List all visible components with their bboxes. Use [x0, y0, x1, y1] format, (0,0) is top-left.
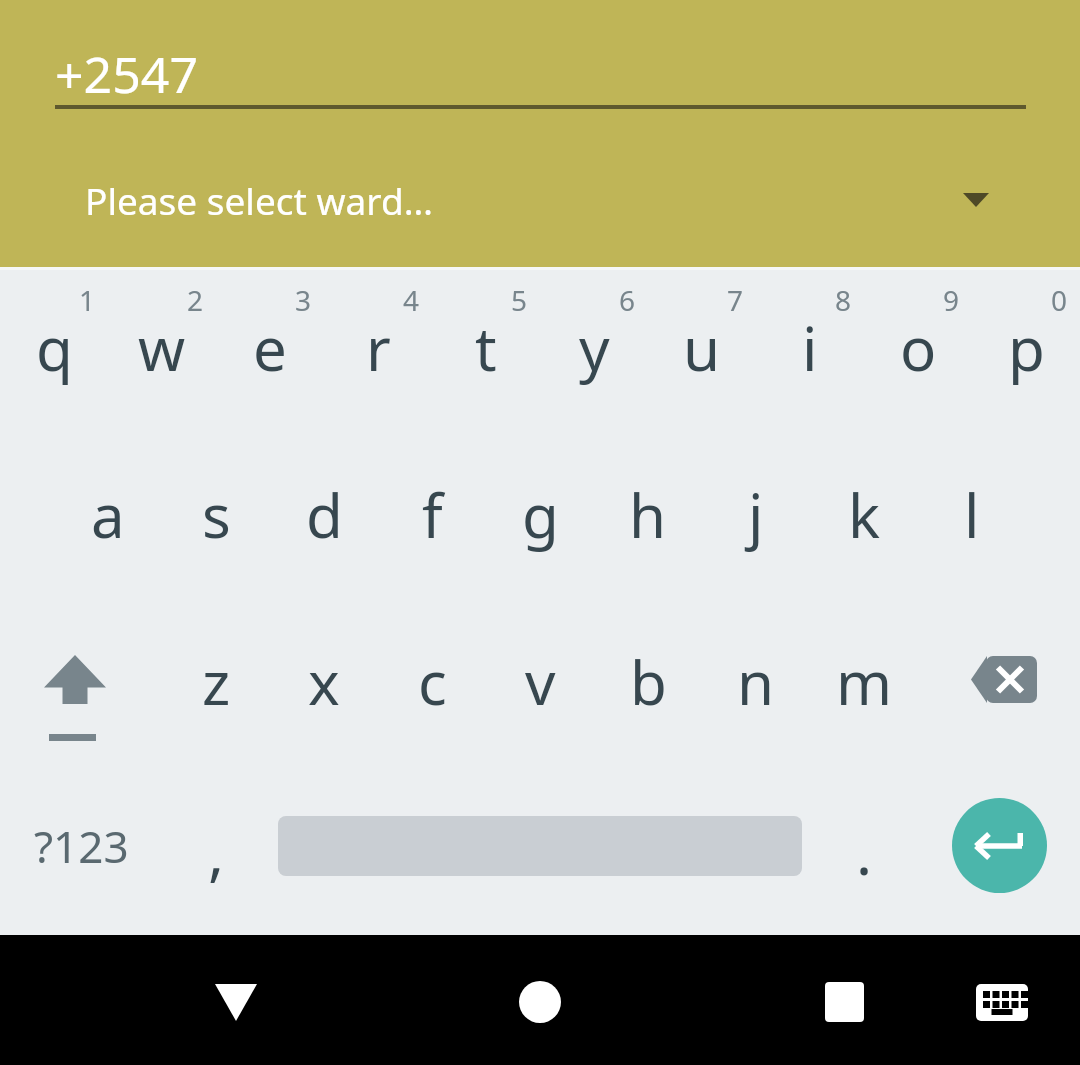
button[interactable]: . — [810, 768, 918, 935]
staticText: f — [422, 474, 443, 556]
button[interactable]: u — [648, 267, 756, 434]
staticText: +2547 — [55, 40, 198, 104]
button[interactable] — [270, 768, 810, 935]
staticText: 5 — [511, 281, 528, 319]
staticText: u — [683, 307, 721, 389]
button[interactable]: q — [0, 267, 108, 434]
button[interactable]: ?123 — [0, 768, 162, 935]
staticText: 8 — [835, 281, 852, 319]
staticText: k — [848, 474, 881, 556]
staticText: , — [208, 811, 225, 893]
staticText: x — [308, 641, 340, 723]
button[interactable]: e — [216, 267, 324, 434]
staticText: y — [579, 307, 610, 389]
button[interactable]: l — [918, 434, 1026, 601]
button[interactable] — [918, 601, 1080, 768]
button[interactable]: v — [486, 601, 594, 768]
button[interactable]: h — [594, 434, 702, 601]
staticText: m — [836, 641, 893, 723]
staticText: . — [856, 811, 873, 893]
staticText: 9 — [943, 281, 960, 319]
button[interactable] — [918, 768, 1080, 935]
button[interactable]: c — [378, 601, 486, 768]
staticText: 4 — [403, 281, 420, 319]
staticText: r — [366, 307, 391, 389]
staticText: 7 — [727, 281, 744, 319]
button[interactable]: i — [756, 267, 864, 434]
staticText: v — [525, 641, 556, 723]
staticText: t — [475, 307, 497, 389]
staticText: 0 — [1051, 281, 1068, 319]
button[interactable]: a — [54, 434, 162, 601]
button[interactable]: z — [162, 601, 270, 768]
button[interactable]: p — [972, 267, 1080, 434]
staticText: l — [964, 474, 980, 556]
staticText: b — [630, 641, 667, 723]
button[interactable]: k — [810, 434, 918, 601]
staticText: 2 — [187, 281, 204, 319]
staticText: g — [522, 474, 559, 556]
button[interactable]: d — [270, 434, 378, 601]
staticText: h — [629, 474, 667, 556]
staticText: i — [802, 307, 818, 389]
staticText: d — [306, 474, 343, 556]
staticText: j — [748, 474, 764, 556]
staticText: q — [36, 307, 73, 389]
staticText: z — [202, 641, 231, 723]
button[interactable]: r — [324, 267, 432, 434]
button[interactable]: y — [540, 267, 648, 434]
button[interactable] — [784, 935, 904, 1065]
button[interactable]: b — [594, 601, 702, 768]
button[interactable]: f — [378, 434, 486, 601]
button[interactable]: s — [162, 434, 270, 601]
staticText: c — [418, 641, 447, 723]
staticText: Please select ward… — [85, 175, 433, 225]
button[interactable] — [176, 935, 296, 1065]
staticText: 6 — [619, 281, 636, 319]
staticText: w — [138, 307, 186, 389]
button[interactable] — [480, 935, 600, 1065]
button[interactable]: n — [702, 601, 810, 768]
button[interactable]: j — [702, 434, 810, 601]
button[interactable]: m — [810, 601, 918, 768]
staticText: 1 — [79, 281, 96, 319]
button[interactable] — [944, 935, 1059, 1065]
staticText: p — [1008, 307, 1045, 389]
staticText: s — [202, 474, 231, 556]
button[interactable]: Please select ward… — [55, 160, 1026, 240]
button[interactable]: w — [108, 267, 216, 434]
button[interactable] — [0, 601, 162, 768]
button[interactable]: x — [270, 601, 378, 768]
staticText: ?123 — [34, 816, 129, 876]
staticText: a — [91, 474, 125, 556]
staticText: o — [900, 307, 937, 389]
button[interactable]: , — [162, 768, 270, 935]
staticText: 3 — [295, 281, 312, 319]
staticText: e — [253, 307, 287, 389]
button[interactable]: o — [864, 267, 972, 434]
staticText: n — [737, 641, 775, 723]
button[interactable]: g — [486, 434, 594, 601]
button[interactable]: t — [432, 267, 540, 434]
